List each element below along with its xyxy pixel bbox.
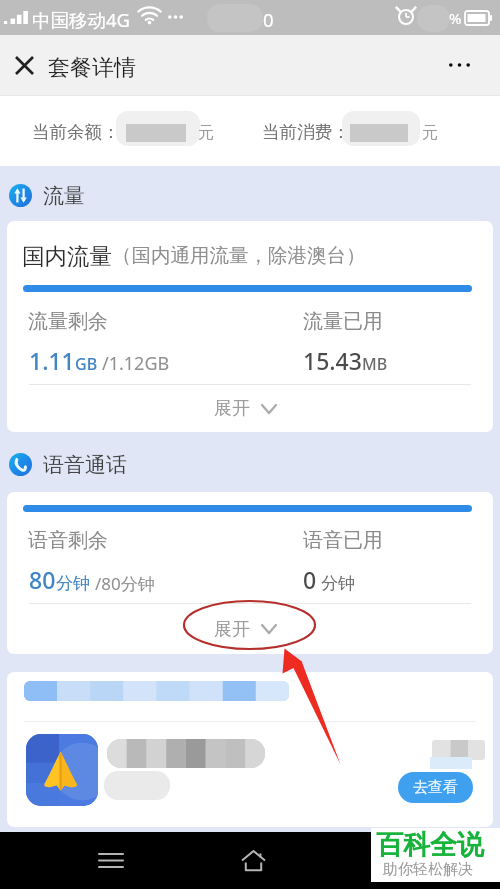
staticText: 元 [198, 123, 214, 143]
staticText: 当前消费： [262, 121, 350, 143]
staticText: 助你轻松解决 [383, 860, 473, 879]
button[interactable]: Menu [87, 832, 135, 889]
staticText: 展开 [214, 618, 250, 641]
staticText: 语音已用 [303, 528, 383, 553]
staticText: 套餐详情 [48, 54, 136, 82]
staticText: 0 [303, 564, 317, 595]
staticText: 1.11 [29, 345, 75, 376]
staticText: 0 [263, 7, 274, 32]
button[interactable]: 去查看 [398, 772, 473, 803]
staticText: 流量剩余 [28, 309, 108, 334]
staticText: 流量 [43, 183, 85, 207]
button[interactable]: 当前余额： [32, 121, 120, 143]
staticText: 80 [29, 564, 56, 595]
staticText: /1.12GB [102, 351, 170, 376]
staticText: 语音剩余 [28, 528, 108, 553]
staticText: 去查看 [413, 778, 458, 797]
staticText: （国内通用流量，除港澳台） [112, 243, 366, 268]
staticText: 流量已用 [303, 309, 383, 334]
staticText: 语音通话 [43, 452, 127, 476]
staticText: GB [75, 353, 98, 375]
staticText: 当前余额： [32, 121, 120, 143]
button[interactable]: 展开 [7, 604, 488, 654]
staticText: /80分钟 [95, 572, 155, 595]
staticText: 国内流量 [22, 242, 112, 270]
staticText: 展开 [214, 397, 250, 420]
button[interactable]: 当前消费： [262, 121, 350, 143]
staticText: 中国移动4G [32, 7, 131, 32]
button[interactable]: Close [10, 51, 38, 79]
staticText: 元 [422, 123, 438, 143]
staticText: 百科全说 [376, 828, 484, 862]
button[interactable]: More options [438, 44, 480, 86]
staticText: 分钟 [56, 573, 90, 594]
staticText: MB [362, 353, 388, 375]
button[interactable]: Home [229, 832, 277, 889]
staticText: % [449, 8, 462, 28]
staticText: 分钟 [321, 573, 355, 594]
staticText: 15.43 [303, 345, 362, 376]
button[interactable]: 展开 [7, 385, 488, 432]
